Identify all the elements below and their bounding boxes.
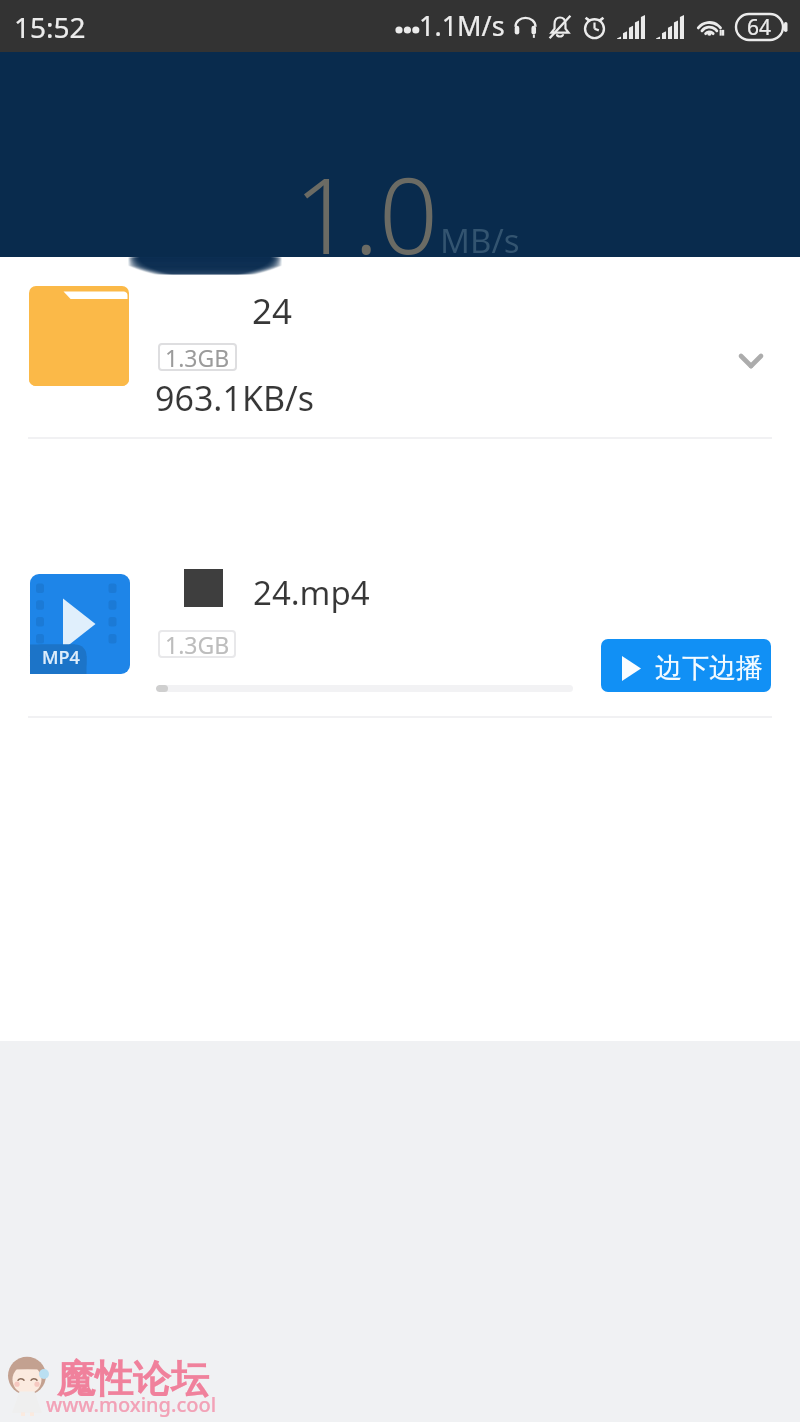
staticText: 963.1KB/s (155, 375, 314, 421)
button[interactable]: MP4 (0, 556, 800, 706)
staticText: 边下边播 (655, 651, 763, 685)
staticText: 24 (252, 287, 293, 335)
button[interactable]: Expand (726, 336, 776, 386)
staticText: MP4 (42, 645, 80, 670)
staticText: 64 (747, 13, 772, 41)
staticText: 1.3GB (165, 342, 230, 370)
staticText: 15:52 (14, 8, 86, 46)
staticText: 魔性论坛 (57, 1355, 209, 1403)
staticText: 24.mp4 (253, 570, 370, 615)
staticText: 1.3GB (165, 629, 230, 657)
button[interactable]: 边下边播 (601, 639, 771, 692)
staticText: 1.0 (294, 143, 439, 285)
staticText: 1.1M/s (419, 7, 505, 44)
staticText: MB/s (440, 218, 520, 263)
staticText: www.moxing.cool (46, 1391, 217, 1418)
button[interactable]: 24 (0, 266, 800, 426)
